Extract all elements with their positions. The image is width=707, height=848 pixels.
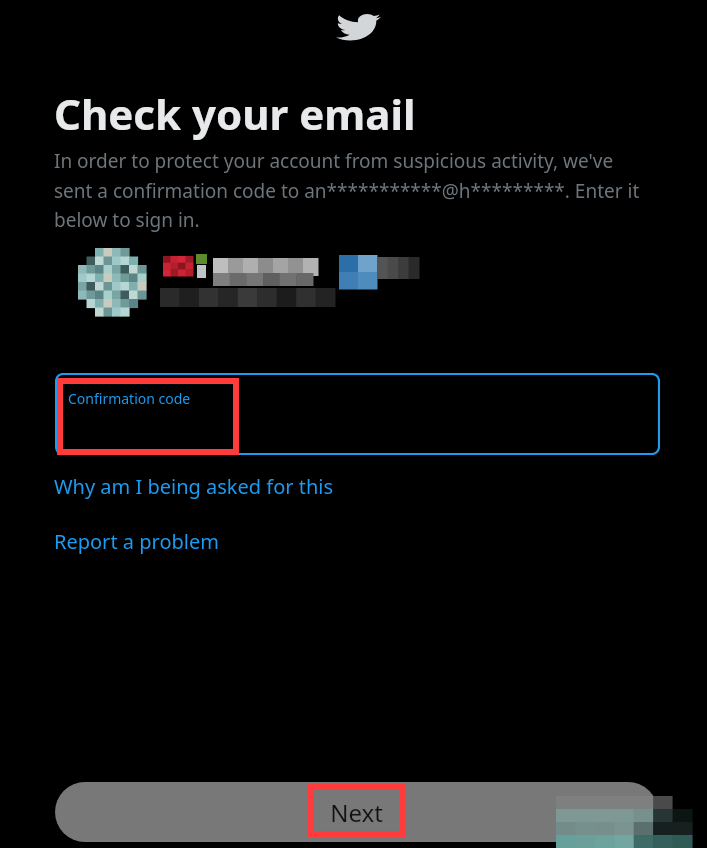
staticText: Report a problem bbox=[54, 528, 219, 555]
button[interactable]: Next bbox=[55, 782, 658, 842]
staticText: In order to protect your account from su… bbox=[54, 148, 654, 232]
button[interactable]: Report a problem bbox=[54, 528, 222, 558]
button[interactable]: Why am I being asked for this informatio… bbox=[54, 473, 456, 503]
staticText: Why am I being asked for this informatio… bbox=[54, 473, 456, 503]
staticText: Confirmation code bbox=[68, 389, 191, 408]
button[interactable]: Confirmation code bbox=[55, 373, 660, 455]
staticText: Next bbox=[330, 796, 383, 829]
staticText: Check your email bbox=[54, 85, 416, 142]
